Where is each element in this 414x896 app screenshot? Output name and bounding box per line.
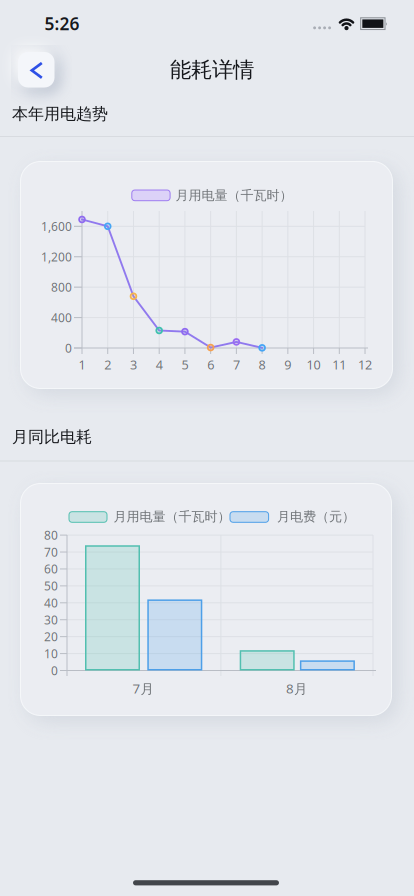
staticText: 1 [78, 356, 85, 373]
staticText: 1,600 [41, 218, 72, 234]
staticText: 40 [44, 595, 58, 611]
staticText: 10 [44, 645, 58, 662]
staticText: 6 [207, 356, 214, 373]
staticText: 0 [51, 662, 58, 679]
staticText: 0 [65, 340, 72, 356]
staticText: 本年用电趋势 [12, 104, 108, 124]
staticText: 月用电量（千瓦时） [113, 508, 230, 525]
staticText: 30 [44, 612, 58, 628]
staticText: 月用电量（千瓦时） [175, 187, 292, 204]
button[interactable]: Back [18, 52, 54, 87]
staticText: 能耗详情 [170, 57, 254, 83]
staticText: 10 [307, 356, 321, 373]
staticText: 80 [44, 527, 58, 543]
staticText: 7月 [132, 679, 153, 697]
staticText: 月电费（元） [277, 508, 355, 525]
staticText: 11 [332, 356, 346, 373]
staticText: 1,200 [41, 249, 72, 265]
staticText: 2 [104, 356, 111, 373]
staticText: 3 [130, 356, 137, 373]
staticText: 5:26 [44, 12, 79, 35]
staticText: 月同比电耗 [12, 427, 92, 447]
staticText: 7 [233, 356, 240, 373]
staticText: 400 [51, 309, 72, 326]
staticText: 60 [44, 561, 58, 577]
staticText: 4 [156, 356, 163, 373]
staticText: 8 [259, 356, 266, 373]
staticText: 8月 [286, 679, 307, 697]
staticText: 5 [181, 356, 188, 373]
staticText: 9 [284, 356, 291, 373]
staticText: 50 [44, 578, 58, 594]
staticText: 70 [44, 544, 58, 560]
staticText: 800 [51, 279, 72, 295]
staticText: 20 [44, 628, 58, 645]
staticText: 12 [358, 356, 372, 373]
